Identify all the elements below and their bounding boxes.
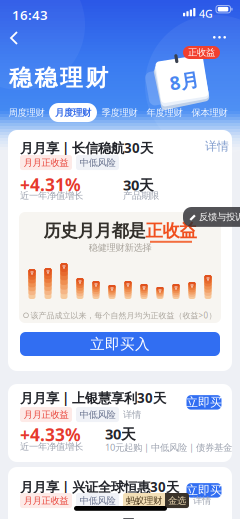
button[interactable]: 反馈与投诉: [183, 207, 240, 227]
staticText: +4.33%: [20, 423, 81, 446]
staticText: 立即买: [186, 483, 222, 498]
staticText: 30天: [123, 175, 154, 194]
staticText: 立即买入: [90, 335, 150, 353]
button[interactable]: 保本理财: [187, 103, 232, 122]
staticText: 30天: [105, 515, 136, 519]
button[interactable]: 详情: [193, 495, 211, 506]
staticText: 30天: [105, 424, 136, 443]
staticText: 月度理财: [55, 107, 91, 118]
staticText: 该产品成立以来，每个自然月均为正收益（收益>0）: [30, 310, 216, 321]
staticText: 近一年净值增长: [20, 190, 83, 201]
staticText: 16:43: [12, 6, 48, 24]
staticText: 4G: [199, 6, 213, 21]
staticText: 月月享 | 兴证全球恒惠30天: [20, 478, 179, 496]
staticText: 月月享 | 长信稳航30天: [20, 139, 153, 157]
staticText: 正收益: [145, 220, 196, 241]
button[interactable]: 详情: [203, 137, 231, 156]
staticText: 中低风险: [79, 409, 115, 420]
staticText: 详情: [205, 139, 229, 154]
button[interactable]: More: [209, 32, 230, 43]
button[interactable]: 立即买: [186, 395, 222, 410]
staticText: 详情: [123, 409, 141, 420]
button[interactable]: Back: [4, 26, 26, 51]
button[interactable]: 年度理财: [142, 103, 187, 122]
staticText: +4.31%: [20, 173, 81, 196]
staticText: 季度理财: [101, 107, 137, 118]
button[interactable]: 立即买入: [20, 332, 220, 356]
staticText: 月月正收益: [23, 495, 68, 506]
staticText: 近一年净值增长: [20, 441, 83, 452]
button[interactable]: 季度理财: [97, 103, 142, 122]
staticText: 正收益: [188, 47, 215, 58]
staticText: 详情: [193, 495, 211, 506]
staticText: 稳稳理财: [9, 64, 108, 92]
staticText: 月月正收益: [23, 157, 68, 168]
staticText: 产品期限: [123, 190, 159, 201]
staticText: 稳健理财新选择: [88, 242, 151, 253]
button[interactable]: 周度理财: [4, 103, 49, 122]
staticText: 金选: [168, 495, 186, 506]
staticText: 中低风险: [79, 495, 115, 506]
button[interactable]: 立即买: [186, 483, 222, 498]
staticText: 历史月月都是: [43, 220, 145, 241]
staticText: 中低风险: [79, 157, 115, 168]
staticText: 年度理财: [146, 107, 182, 118]
staticText: 月月正收益: [23, 409, 68, 420]
staticText: 周度理财: [8, 107, 44, 118]
staticText: 反馈与投诉: [199, 211, 240, 223]
staticText: 10元起购 | 中低风险 | 债券基金: [105, 441, 232, 453]
staticText: 立即买: [186, 395, 222, 410]
staticText: 月月享 | 上银慧享利30天: [20, 389, 166, 407]
staticText: 8月: [169, 69, 199, 94]
button[interactable]: 详情: [123, 409, 141, 420]
staticText: 蚂蚁理财: [126, 495, 162, 506]
staticText: 保本理财: [191, 107, 227, 118]
button[interactable]: 月度理财: [49, 103, 97, 122]
